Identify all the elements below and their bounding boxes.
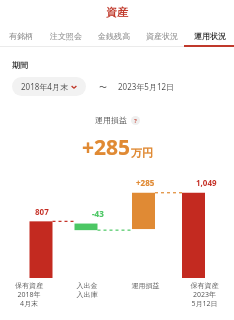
button[interactable]: 運用状況: [186, 24, 234, 47]
staticText: 1,049: [196, 177, 217, 188]
staticText: 運用状況: [194, 31, 226, 41]
staticText: 807: [35, 206, 49, 217]
staticText: 入出金 入出庫: [58, 281, 116, 299]
staticText: 資産状況: [146, 31, 178, 41]
staticText: -43: [92, 208, 104, 219]
staticText: 万円: [131, 146, 153, 160]
button[interactable]: 注文照会: [42, 24, 90, 47]
staticText: 運用損益: [95, 115, 127, 125]
button[interactable]: 有銘柄: [0, 24, 42, 47]
staticText: +285: [82, 133, 131, 162]
staticText: 〜: [99, 82, 107, 92]
button[interactable]: 資産状況: [138, 24, 186, 47]
staticText: 保有資産 2018年 4月末: [0, 281, 58, 308]
button[interactable]: 2018年4月末: [12, 77, 86, 96]
staticText: 保有資産 2023年 5月12日: [175, 281, 234, 308]
staticText: +285: [136, 177, 155, 188]
staticText: 資産: [106, 5, 128, 19]
staticText: 金銭残高: [98, 31, 130, 41]
button[interactable]: 金銭残高: [90, 24, 138, 47]
staticText: 注文照会: [50, 31, 82, 41]
staticText: 2018年4月末: [21, 81, 68, 92]
staticText: 期間: [12, 60, 28, 70]
staticText: ?: [134, 117, 137, 125]
staticText: 2023年5月12日: [118, 81, 175, 92]
staticText: 有銘柄: [9, 31, 33, 41]
button[interactable]: ヘルプ: [131, 116, 140, 125]
staticText: 運用損益: [116, 281, 175, 290]
